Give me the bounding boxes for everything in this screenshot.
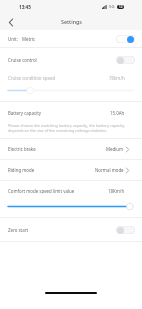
staticText: Please choose the matching battery capac…	[8, 123, 125, 133]
button[interactable]: Electric brake	[0, 139, 142, 159]
button[interactable]: Cruise control	[0, 48, 142, 71]
button[interactable]: Switch on	[116, 35, 135, 43]
staticText: Battery capacity	[8, 110, 41, 116]
button[interactable]: Zero start	[0, 218, 142, 241]
staticText: Unit:	[8, 36, 18, 42]
button[interactable]: Riding mode	[0, 160, 142, 180]
staticText: 15.0Ah	[110, 110, 125, 116]
staticText: Medium	[106, 146, 124, 152]
staticText: Comfort mode speed limit value	[8, 188, 75, 194]
staticText: Zero start	[8, 227, 29, 233]
button[interactable]: Unit:	[0, 30, 142, 47]
button[interactable]: Back	[3, 14, 19, 30]
staticText: 18Km/h	[108, 188, 125, 194]
staticText: Riding mode	[8, 167, 35, 173]
staticText: 13:45	[19, 4, 31, 10]
staticText: Settings	[61, 18, 82, 25]
staticText: 12	[119, 5, 123, 9]
staticText: Metric	[22, 36, 36, 42]
button[interactable]: Cruise condition speed	[0, 71, 142, 85]
button[interactable]: Comfort mode speed limit value	[0, 181, 142, 201]
button[interactable]: Battery capacity	[0, 102, 142, 123]
staticText: Cruise condition speed	[8, 75, 56, 81]
button[interactable]: Switch off	[116, 226, 135, 234]
staticText: 5G	[109, 4, 115, 10]
staticText: Cruise control	[8, 57, 37, 63]
staticText: Normal mode	[95, 167, 124, 173]
button[interactable]: Switch off	[116, 56, 135, 64]
staticText: 76km/h	[109, 75, 125, 81]
staticText: Electric brake	[8, 146, 36, 152]
